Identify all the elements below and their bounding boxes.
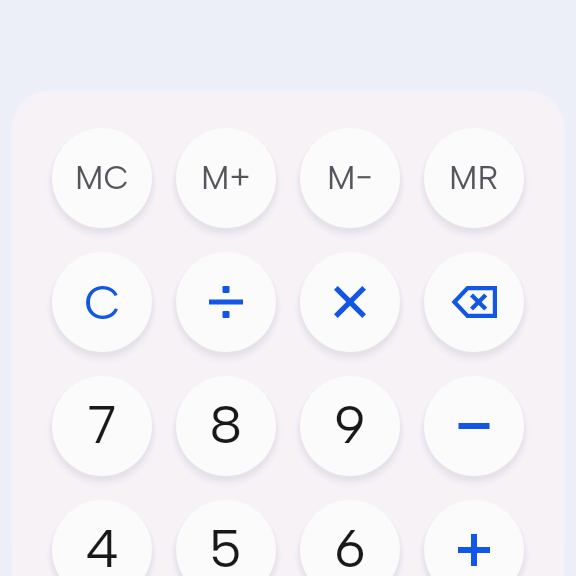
button[interactable]: Backspace xyxy=(424,252,524,352)
button[interactable]: 5 xyxy=(176,500,276,576)
staticText: M− xyxy=(327,158,373,198)
button[interactable]: Minus xyxy=(424,376,524,476)
staticText: C xyxy=(84,273,121,331)
button[interactable]: 7 xyxy=(52,376,152,476)
button[interactable]: M+ xyxy=(176,128,276,228)
staticText: MR xyxy=(449,158,499,198)
staticText: 5 xyxy=(209,517,243,576)
button[interactable]: C xyxy=(52,252,152,352)
button[interactable]: 4 xyxy=(52,500,152,576)
button[interactable]: M− xyxy=(300,128,400,228)
staticText: 8 xyxy=(209,393,243,457)
staticText: MC xyxy=(75,158,129,198)
button[interactable]: 8 xyxy=(176,376,276,476)
button[interactable]: MC xyxy=(52,128,152,228)
staticText: M+ xyxy=(201,158,251,198)
staticText: 4 xyxy=(85,517,120,576)
staticText: 7 xyxy=(87,393,117,457)
button[interactable]: Multiply xyxy=(300,252,400,352)
button[interactable]: 6 xyxy=(300,500,400,576)
staticText: 9 xyxy=(334,393,366,457)
button[interactable]: Divide xyxy=(176,252,276,352)
button[interactable]: MR xyxy=(424,128,524,228)
button[interactable]: Plus xyxy=(424,500,524,576)
button[interactable]: 9 xyxy=(300,376,400,476)
staticText: 6 xyxy=(334,517,366,576)
